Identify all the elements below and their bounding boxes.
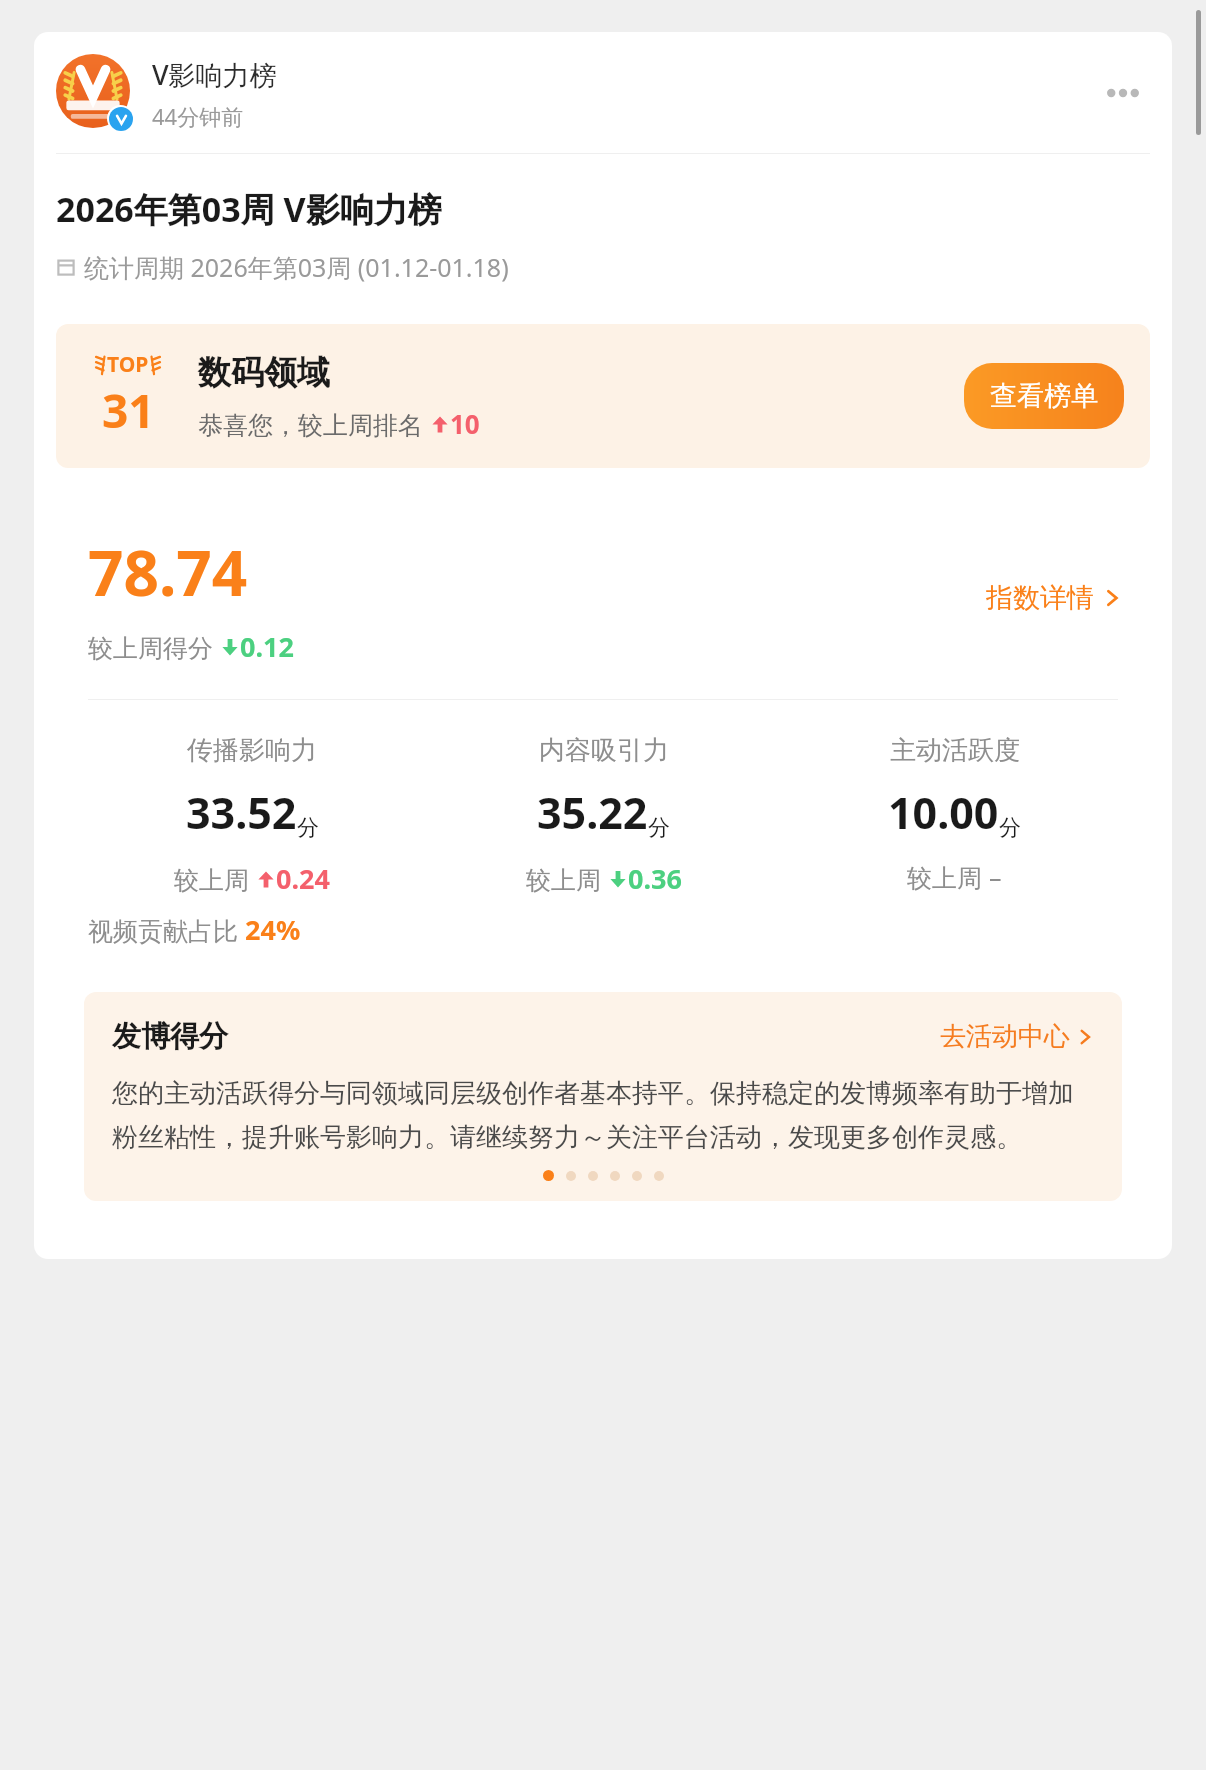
button[interactable]: 去活动中心 bbox=[940, 1020, 1094, 1053]
button[interactable]: 指数详情 bbox=[986, 581, 1122, 615]
staticText: 较上周 bbox=[907, 860, 989, 894]
staticText: 指数详情 bbox=[986, 581, 1094, 615]
staticText: 31 bbox=[102, 379, 155, 442]
staticText: 10.00 bbox=[888, 783, 999, 842]
staticText: 分 bbox=[999, 814, 1021, 842]
staticText: 视频贡献占比 bbox=[88, 913, 245, 947]
staticText: 查看榜单 bbox=[990, 379, 1098, 413]
staticText: 24% bbox=[245, 911, 301, 948]
button[interactable]: TOP bbox=[56, 324, 1150, 468]
button[interactable]: 查看榜单 bbox=[964, 363, 1124, 429]
staticText: – bbox=[989, 860, 1002, 894]
staticText: 33.52 bbox=[186, 783, 297, 842]
staticText: 较上周 bbox=[174, 862, 256, 896]
staticText: 恭喜您，较上周排名 bbox=[198, 407, 430, 441]
staticText: 您的主动活跃得分与同领域同层级创作者基本持平。保持稳定的发博频率有助于增加粉丝粘… bbox=[112, 1077, 1094, 1154]
staticText: 分 bbox=[297, 814, 319, 842]
staticText: 内容吸引力 bbox=[539, 734, 669, 767]
staticText: 较上周得分 bbox=[88, 630, 220, 664]
staticText: 传播影响力 bbox=[187, 734, 317, 767]
staticText: 数码领域 bbox=[198, 352, 330, 394]
button[interactable]: V影响力榜 bbox=[56, 54, 1150, 132]
staticText: TOP bbox=[107, 350, 149, 379]
staticText: 2026年第03周 V影响力榜 bbox=[56, 186, 442, 232]
button[interactable]: 内容吸引力 bbox=[428, 734, 779, 897]
staticText: 0.12 bbox=[240, 628, 294, 665]
staticText: 主动活跃度 bbox=[890, 734, 1020, 767]
staticText: 发博得分 bbox=[112, 1018, 940, 1055]
staticText: 去活动中心 bbox=[940, 1020, 1070, 1053]
staticText: 统计周期 2026年第03周 (01.12-01.18) bbox=[84, 250, 509, 284]
staticText: 0.24 bbox=[276, 860, 330, 897]
staticText: 10 bbox=[450, 406, 480, 441]
staticText: 分 bbox=[648, 814, 670, 842]
button[interactable]: 传播影响力 bbox=[76, 734, 428, 897]
button[interactable]: More options bbox=[1096, 66, 1150, 120]
staticText: V影响力榜 bbox=[152, 56, 277, 93]
staticText: 78.74 bbox=[88, 530, 248, 614]
staticText: 35.22 bbox=[537, 783, 648, 842]
staticText: 44分钟前 bbox=[152, 101, 244, 131]
staticText: 0.36 bbox=[628, 860, 682, 897]
staticText: 较上周 bbox=[526, 862, 608, 896]
button[interactable]: 发博得分 bbox=[84, 992, 1122, 1201]
button[interactable]: 主动活跃度 bbox=[779, 734, 1130, 894]
